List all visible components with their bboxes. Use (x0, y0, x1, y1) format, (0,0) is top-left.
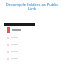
button[interactable] (4, 26, 35, 34)
button[interactable] (4, 55, 35, 62)
button[interactable] (4, 48, 35, 55)
button[interactable] (4, 41, 35, 48)
button[interactable] (4, 34, 35, 41)
staticText: Decompile folders as Public Link (3, 2, 61, 11)
